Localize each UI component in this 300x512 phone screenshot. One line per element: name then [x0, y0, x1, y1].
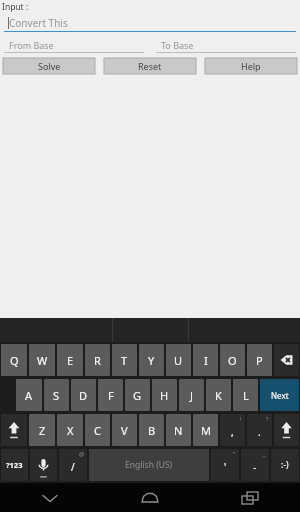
button[interactable]: Shift: [274, 414, 299, 446]
staticText: Convert This: [9, 16, 68, 30]
button[interactable]: N: [166, 414, 191, 446]
button[interactable]: H: [152, 379, 177, 411]
button[interactable]: T: [112, 344, 137, 376]
button[interactable]: D: [71, 379, 96, 411]
button[interactable]: @: [59, 449, 87, 481]
staticText: @: [79, 450, 84, 457]
button[interactable]: English (US): [89, 449, 209, 481]
staticText: Input :: [2, 1, 29, 13]
staticText: To Base: [161, 39, 194, 51]
button[interactable]: C: [85, 414, 110, 446]
button[interactable]: Q: [1, 344, 27, 376]
staticText: M: [201, 423, 211, 438]
button[interactable]: J: [179, 379, 204, 411]
button[interactable]: Recent apps: [200, 483, 300, 512]
staticText: ': [224, 460, 227, 474]
button[interactable]: Home: [100, 483, 200, 512]
button[interactable]: Reset: [104, 58, 196, 74]
staticText: X: [67, 423, 74, 438]
button[interactable]: Delete: [274, 344, 299, 376]
button[interactable]: R: [85, 344, 110, 376]
staticText: :-): [281, 459, 289, 471]
button[interactable]: X: [57, 414, 83, 446]
button[interactable]: Hide keyboard: [0, 483, 100, 512]
staticText: _: [263, 450, 266, 457]
staticText: L: [243, 388, 249, 403]
button[interactable]: Next: [260, 379, 299, 411]
staticText: D: [79, 388, 88, 403]
staticText: R: [94, 353, 101, 368]
button[interactable]: L: [233, 379, 258, 411]
staticText: Help: [241, 60, 261, 72]
button[interactable]: G: [125, 379, 150, 411]
button[interactable]: :-): [271, 449, 299, 481]
button[interactable]: S: [44, 379, 69, 411]
staticText: /: [71, 460, 75, 474]
staticText: Reset: [138, 60, 162, 72]
button[interactable]: Help: [205, 58, 297, 74]
button[interactable]: Z: [29, 414, 55, 446]
staticText: S: [53, 388, 60, 403]
staticText: U: [174, 353, 183, 368]
button[interactable]: Shift: [1, 414, 27, 446]
staticText: G: [133, 388, 142, 403]
staticText: E: [67, 353, 74, 368]
staticText: ?123: [6, 460, 23, 470]
staticText: K: [215, 388, 222, 403]
staticText: A: [25, 388, 33, 403]
staticText: B: [148, 423, 156, 438]
button[interactable]: ": [211, 449, 239, 481]
button[interactable]: ?123: [1, 449, 28, 481]
button[interactable]: W: [29, 344, 55, 376]
button[interactable]: ?: [247, 414, 272, 446]
staticText: ": [233, 450, 236, 457]
button[interactable]: Y: [139, 344, 164, 376]
staticText: C: [94, 423, 101, 438]
button[interactable]: Voice input: [30, 449, 57, 481]
button[interactable]: E: [57, 344, 83, 376]
staticText: ,: [231, 425, 234, 439]
staticText: W: [37, 353, 48, 368]
button[interactable]: V: [112, 414, 137, 446]
staticText: Y: [148, 353, 155, 368]
button[interactable]: A: [16, 379, 42, 411]
staticText: Q: [10, 353, 19, 368]
button[interactable]: _: [241, 449, 269, 481]
button[interactable]: P: [247, 344, 272, 376]
button[interactable]: M: [193, 414, 218, 446]
staticText: Next: [271, 390, 289, 401]
staticText: T: [121, 353, 128, 368]
button[interactable]: U: [166, 344, 191, 376]
button[interactable]: From Base: [4, 36, 144, 53]
staticText: From Base: [9, 39, 54, 51]
staticText: N: [174, 423, 183, 438]
staticText: ?: [266, 415, 269, 422]
staticText: H: [160, 388, 169, 403]
button[interactable]: To Base: [156, 36, 296, 53]
staticText: .: [258, 425, 261, 439]
button[interactable]: !: [220, 414, 245, 446]
button[interactable]: Convert This: [4, 13, 296, 32]
staticText: V: [121, 423, 128, 438]
button[interactable]: O: [220, 344, 245, 376]
button[interactable]: F: [98, 379, 123, 411]
staticText: I: [204, 353, 208, 368]
button[interactable]: I: [193, 344, 218, 376]
button[interactable]: Solve: [3, 58, 95, 74]
staticText: O: [228, 353, 237, 368]
staticText: P: [256, 353, 263, 368]
staticText: English (US): [125, 459, 173, 471]
staticText: F: [108, 388, 114, 403]
staticText: !: [240, 415, 242, 422]
staticText: Z: [39, 423, 46, 438]
staticText: J: [190, 388, 194, 403]
staticText: -: [253, 460, 257, 474]
button[interactable]: K: [206, 379, 231, 411]
staticText: Solve: [38, 60, 61, 72]
button[interactable]: B: [139, 414, 164, 446]
